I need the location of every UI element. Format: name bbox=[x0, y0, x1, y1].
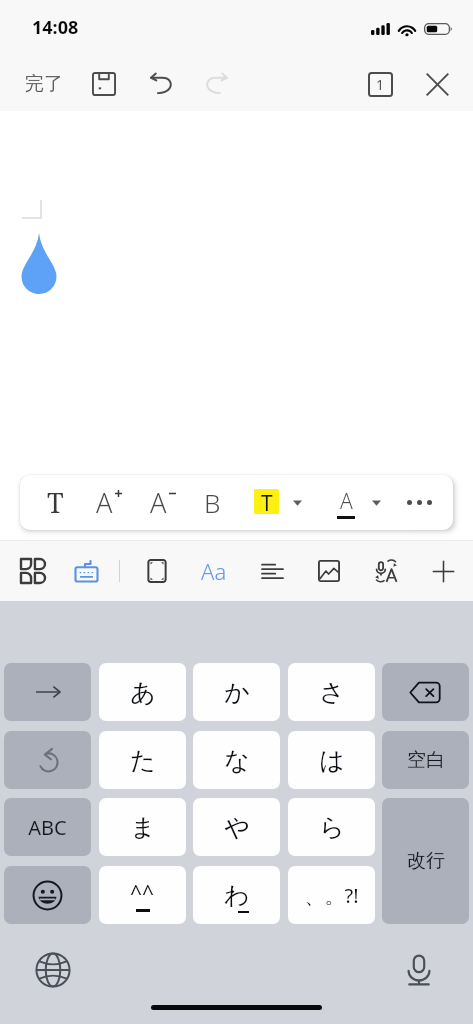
button[interactable]: Highlight bbox=[249, 475, 283, 530]
button[interactable]: わ bbox=[193, 866, 280, 924]
staticText: T bbox=[47, 484, 64, 521]
staticText: は bbox=[319, 745, 345, 776]
staticText: 1 bbox=[376, 75, 385, 94]
button[interactable]: Apps bbox=[12, 550, 54, 592]
button[interactable]: さ bbox=[288, 663, 375, 721]
button[interactable]: Backspace bbox=[382, 663, 469, 721]
button[interactable]: Close bbox=[415, 62, 459, 106]
staticText: 完了 bbox=[25, 72, 63, 96]
button[interactable]: Align bbox=[251, 550, 293, 592]
button[interactable]: Keyboard bbox=[65, 550, 107, 592]
staticText: あ bbox=[130, 677, 156, 708]
button[interactable]: 、。?! bbox=[288, 866, 375, 924]
staticText: A bbox=[96, 484, 113, 521]
button[interactable]: Redo bbox=[195, 62, 239, 106]
staticText: 空白 bbox=[407, 748, 445, 772]
staticText: 改行 bbox=[407, 849, 445, 873]
button[interactable]: Text style bbox=[34, 475, 76, 530]
button[interactable]: Add bbox=[422, 550, 464, 592]
staticText: Aa bbox=[201, 556, 227, 586]
staticText: 、。?! bbox=[304, 882, 359, 909]
button[interactable]: Decrease font size bbox=[141, 475, 183, 530]
button[interactable]: か bbox=[193, 663, 280, 721]
button[interactable]: Insert image bbox=[308, 550, 350, 592]
staticText: ら bbox=[319, 812, 345, 843]
staticText: B bbox=[204, 485, 221, 520]
button[interactable]: Next candidate bbox=[4, 663, 91, 721]
button[interactable]: More options bbox=[399, 475, 439, 530]
button[interactable]: Dictation bbox=[398, 949, 440, 991]
button[interactable]: Dictate and translate bbox=[365, 550, 407, 592]
button[interactable]: 完了 bbox=[14, 56, 74, 111]
staticText: ABC bbox=[28, 814, 67, 841]
button[interactable]: 空白 bbox=[382, 731, 469, 789]
button[interactable]: ABC bbox=[4, 798, 91, 856]
staticText: か bbox=[224, 677, 250, 708]
staticText: ^^ bbox=[130, 879, 155, 908]
button[interactable]: あ bbox=[99, 663, 186, 721]
staticText: わ bbox=[224, 880, 250, 911]
button[interactable]: Text colour bbox=[329, 475, 363, 530]
staticText: や bbox=[224, 812, 250, 843]
button[interactable]: は bbox=[288, 731, 375, 789]
staticText: A bbox=[340, 487, 353, 516]
button[interactable]: や bbox=[193, 798, 280, 856]
button[interactable]: Switch keyboard bbox=[32, 949, 74, 991]
button[interactable]: Page count bbox=[358, 62, 402, 106]
staticText: た bbox=[130, 745, 156, 776]
button[interactable]: Font bbox=[193, 550, 235, 592]
button[interactable]: Highlight colour bbox=[286, 475, 308, 530]
staticText: 14:08 bbox=[32, 15, 79, 40]
staticText: な bbox=[224, 745, 250, 776]
staticText: さ bbox=[319, 677, 345, 708]
button[interactable]: ま bbox=[99, 798, 186, 856]
button[interactable]: Bold bbox=[191, 475, 233, 530]
button[interactable]: Text colour options bbox=[365, 475, 387, 530]
button[interactable]: な bbox=[193, 731, 280, 789]
button[interactable]: た bbox=[99, 731, 186, 789]
button[interactable]: ら bbox=[288, 798, 375, 856]
button[interactable]: Select bbox=[136, 550, 178, 592]
button[interactable]: Kaomoji bbox=[99, 866, 186, 924]
button[interactable]: Undo bbox=[139, 62, 183, 106]
button[interactable]: Emoji bbox=[4, 866, 91, 924]
button[interactable]: Save bbox=[82, 62, 126, 106]
button[interactable]: 改行 bbox=[382, 798, 469, 924]
button[interactable]: Undo bbox=[4, 731, 91, 789]
button[interactable]: Increase font size bbox=[87, 475, 129, 530]
staticText: T bbox=[261, 489, 273, 514]
staticText: A bbox=[150, 484, 167, 521]
staticText: ま bbox=[130, 812, 156, 843]
